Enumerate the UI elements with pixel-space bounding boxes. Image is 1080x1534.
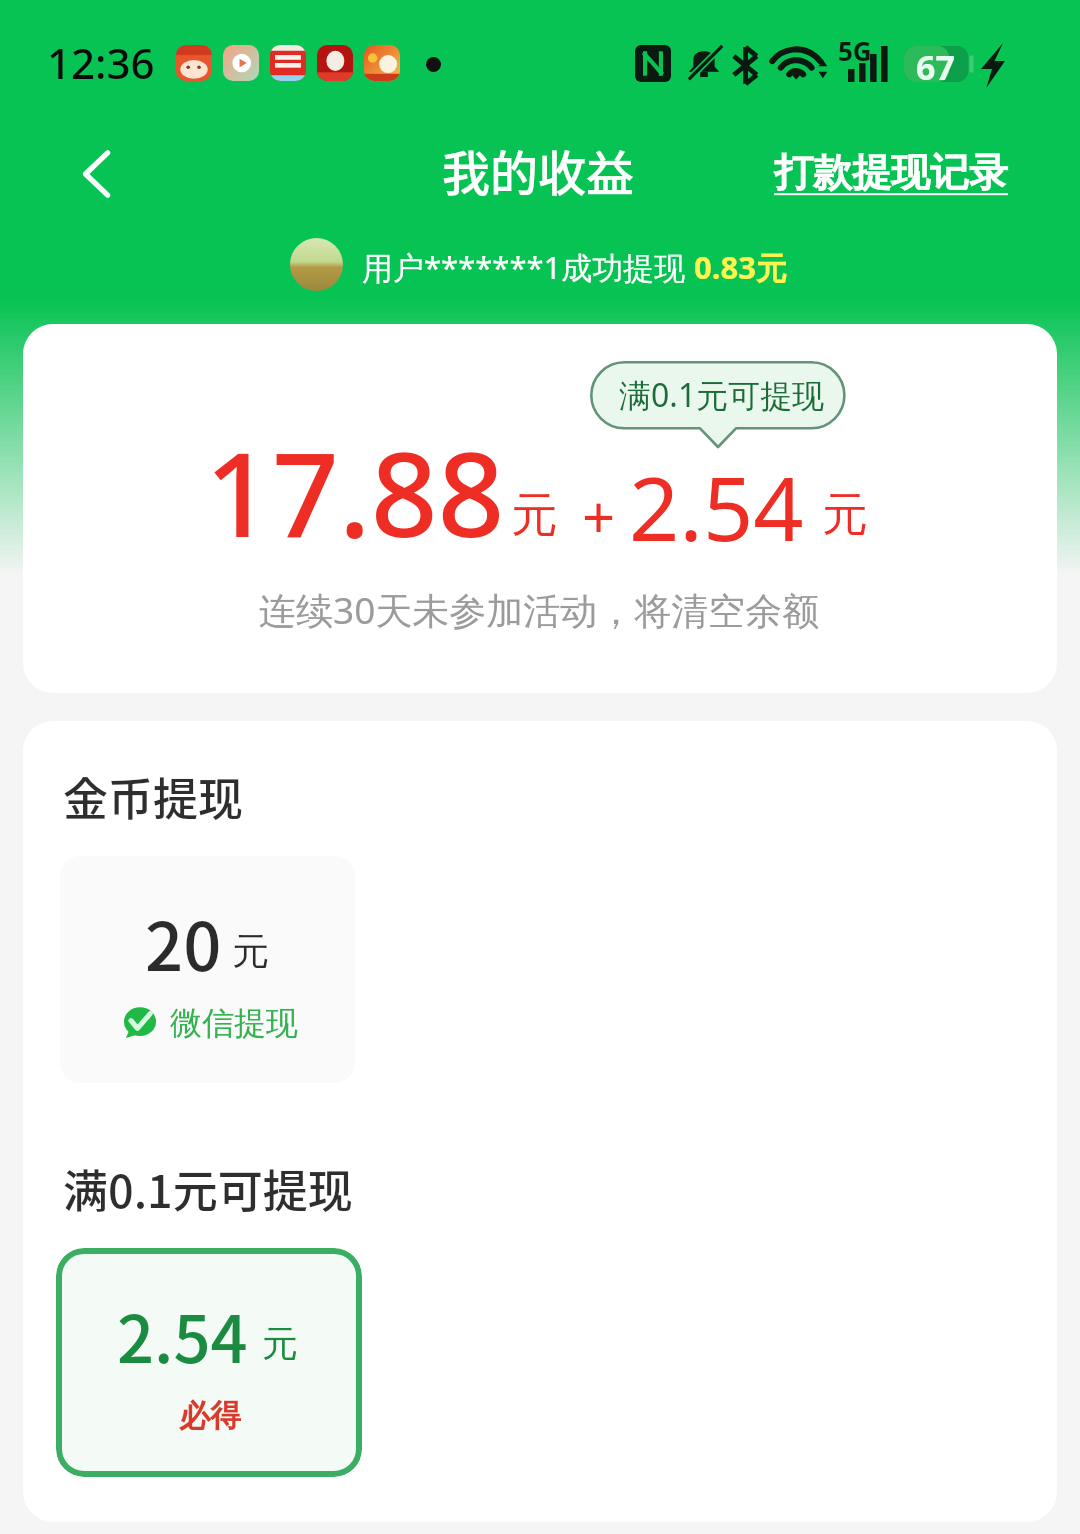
- staticText: +: [582, 477, 616, 556]
- staticText: 元: [262, 1321, 298, 1366]
- staticText: 金币提现: [63, 764, 244, 829]
- staticText: 连续30天未参加活动，将清空余额: [259, 584, 820, 635]
- staticText: 微信提现: [170, 1003, 298, 1043]
- staticText: 满0.1元可提现: [619, 373, 825, 417]
- button[interactable]: 用户*******1成功提现: [282, 230, 798, 298]
- staticText: 67: [916, 44, 955, 90]
- staticText: 我的收益: [442, 135, 635, 205]
- staticText: 元: [232, 928, 269, 975]
- button[interactable]: Back: [60, 136, 136, 212]
- staticText: 元: [822, 486, 868, 544]
- staticText: 元: [511, 486, 558, 545]
- staticText: 用户*******1成功提现: [362, 246, 694, 288]
- button[interactable]: 20: [60, 856, 355, 1083]
- staticText: 打款提现记录: [774, 148, 1008, 197]
- button[interactable]: 打款提现记录: [755, 126, 1027, 214]
- staticText: 12:36: [47, 34, 155, 91]
- staticText: 2.54: [117, 1288, 248, 1382]
- staticText: 满0.1元可提现: [63, 1156, 353, 1221]
- button[interactable]: 2.54: [56, 1248, 362, 1477]
- staticText: 5G: [838, 33, 872, 68]
- staticText: 17.88: [205, 412, 505, 571]
- staticText: 必得: [179, 1396, 241, 1435]
- staticText: 2.54: [629, 447, 804, 567]
- staticText: 0.83元: [694, 246, 787, 288]
- staticText: 20: [145, 893, 222, 990]
